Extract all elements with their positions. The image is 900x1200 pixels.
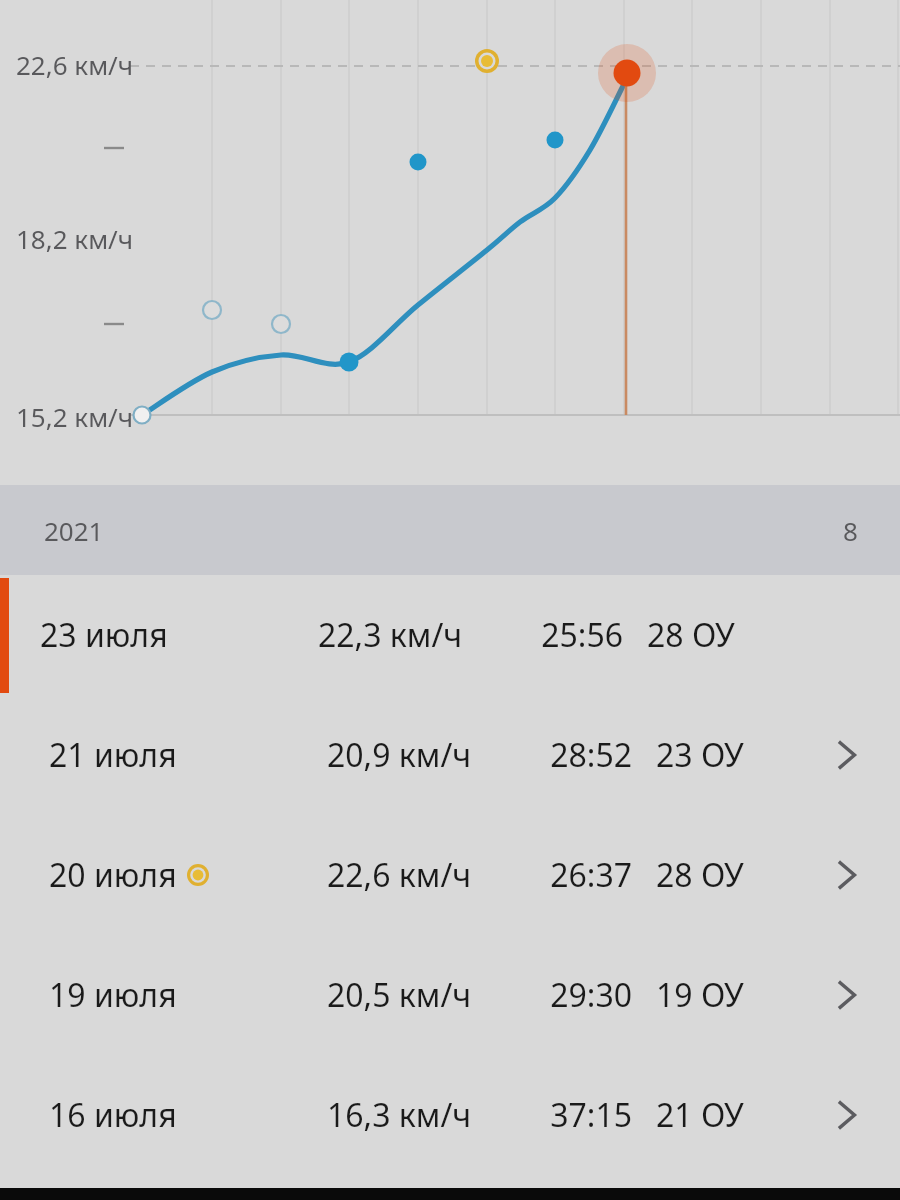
- button[interactable]: 21 июля: [0, 695, 900, 815]
- staticText: 19 ОУ: [656, 973, 744, 1017]
- staticText: 25:56: [503, 613, 623, 657]
- staticText: 22,6 км/ч: [16, 47, 134, 82]
- staticText: 8: [843, 513, 858, 548]
- staticText: 19 июля: [49, 973, 177, 1017]
- staticText: 29:30: [512, 973, 632, 1017]
- staticText: 28 ОУ: [656, 853, 744, 897]
- staticText: 37:15: [512, 1093, 632, 1137]
- other: Open details: [815, 723, 879, 787]
- button[interactable]: 20 июля: [0, 815, 900, 935]
- other: Open details: [815, 1083, 879, 1147]
- staticText: 20,9 км/ч: [327, 733, 512, 777]
- staticText: 23 ОУ: [656, 733, 744, 777]
- staticText: 15,2 км/ч: [16, 399, 134, 434]
- staticText: 23 июля: [40, 613, 168, 657]
- button[interactable]: 16 июля: [0, 1055, 900, 1175]
- button[interactable]: 19 июля: [0, 935, 900, 1055]
- staticText: 28:52: [512, 733, 632, 777]
- staticText: 22,3 км/ч: [318, 613, 503, 657]
- staticText: 26:37: [512, 853, 632, 897]
- staticText: 20,5 км/ч: [327, 973, 512, 1017]
- staticText: 20 июля: [49, 853, 177, 897]
- button[interactable]: 23 июля: [0, 575, 900, 695]
- staticText: 16,3 км/ч: [327, 1093, 512, 1137]
- staticText: 22,6 км/ч: [327, 853, 512, 897]
- other: Open details: [815, 843, 879, 907]
- other: Open details: [815, 963, 879, 1027]
- staticText: 21 ОУ: [656, 1093, 744, 1137]
- staticText: 21 июля: [49, 733, 177, 777]
- staticText: 28 ОУ: [647, 613, 735, 657]
- staticText: 16 июля: [49, 1093, 177, 1137]
- staticText: 18,2 км/ч: [16, 221, 134, 256]
- staticText: 2021: [44, 513, 104, 548]
